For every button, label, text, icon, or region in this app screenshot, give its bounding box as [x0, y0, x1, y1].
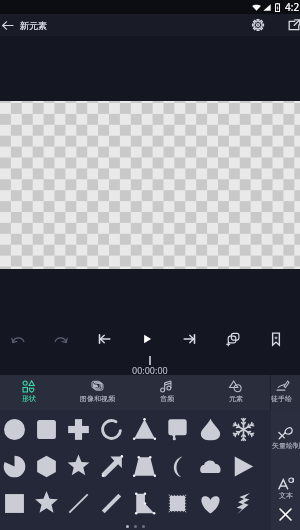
staticText: 图像和视频: [80, 394, 115, 403]
button[interactable]: 矢量绘制: [271, 425, 300, 450]
staticText: 元素: [229, 394, 243, 403]
button[interactable]: Export: [283, 14, 300, 36]
button[interactable]: 文本: [271, 477, 300, 500]
button[interactable]: Shape 8: [227, 411, 260, 448]
button[interactable]: Settings: [247, 14, 269, 36]
button[interactable]: 形状: [0, 375, 63, 410]
button[interactable]: Shape 4: [95, 411, 128, 448]
staticText: 徒手绘制: [271, 394, 294, 403]
button[interactable]: Shape 7: [194, 411, 227, 448]
button[interactable]: Shape 6: [161, 411, 194, 448]
button[interactable]: Shape 1: [0, 411, 30, 448]
button[interactable]: 元素: [201, 375, 270, 410]
button[interactable]: Shape 3: [62, 411, 95, 448]
button[interactable]: 音频: [132, 375, 201, 410]
button[interactable]: 徒手绘制: [271, 375, 294, 410]
button[interactable]: Shape 12: [95, 448, 128, 485]
button[interactable]: Shape 11: [62, 448, 95, 485]
button[interactable]: Shape 23: [194, 485, 227, 522]
staticText: 形状: [22, 394, 36, 403]
button[interactable]: Shape 17: [0, 485, 30, 522]
button[interactable]: Duplicate: [211, 322, 254, 356]
staticText: 4:2: [285, 0, 300, 14]
button[interactable]: 图像和视频: [63, 375, 132, 410]
staticText: 新元素: [20, 20, 47, 31]
button[interactable]: Shape 19: [62, 485, 95, 522]
button[interactable]: Undo: [0, 322, 39, 356]
button[interactable]: Shape 9: [0, 448, 30, 485]
button[interactable]: Back: [0, 14, 14, 36]
button[interactable]: Close: [271, 500, 300, 529]
staticText: 音频: [160, 394, 174, 403]
button[interactable]: Shape 10: [30, 448, 62, 485]
button[interactable]: Bookmark: [254, 322, 297, 356]
button[interactable]: Shape 18: [30, 485, 62, 522]
button[interactable]: Shape 21: [128, 485, 161, 522]
button[interactable]: Shape 5: [128, 411, 161, 448]
button[interactable]: Redo: [39, 322, 82, 356]
staticText: 矢量绘制: [272, 441, 300, 450]
button[interactable]: Shape 22: [161, 485, 194, 522]
button[interactable]: Shape 16: [227, 448, 260, 485]
button[interactable]: Play: [125, 322, 168, 356]
button[interactable]: Shape 2: [30, 411, 62, 448]
button[interactable]: Skip to start: [82, 322, 125, 356]
button[interactable]: Shape 13: [128, 448, 161, 485]
button[interactable]: Shape 20: [95, 485, 128, 522]
button[interactable]: Shape 24: [227, 485, 260, 522]
button[interactable]: Shape 15: [194, 448, 227, 485]
staticText: 00:00:00: [132, 364, 168, 376]
button[interactable]: Shape 14: [161, 448, 194, 485]
staticText: 文本: [279, 491, 293, 500]
button[interactable]: Skip to end: [168, 322, 211, 356]
